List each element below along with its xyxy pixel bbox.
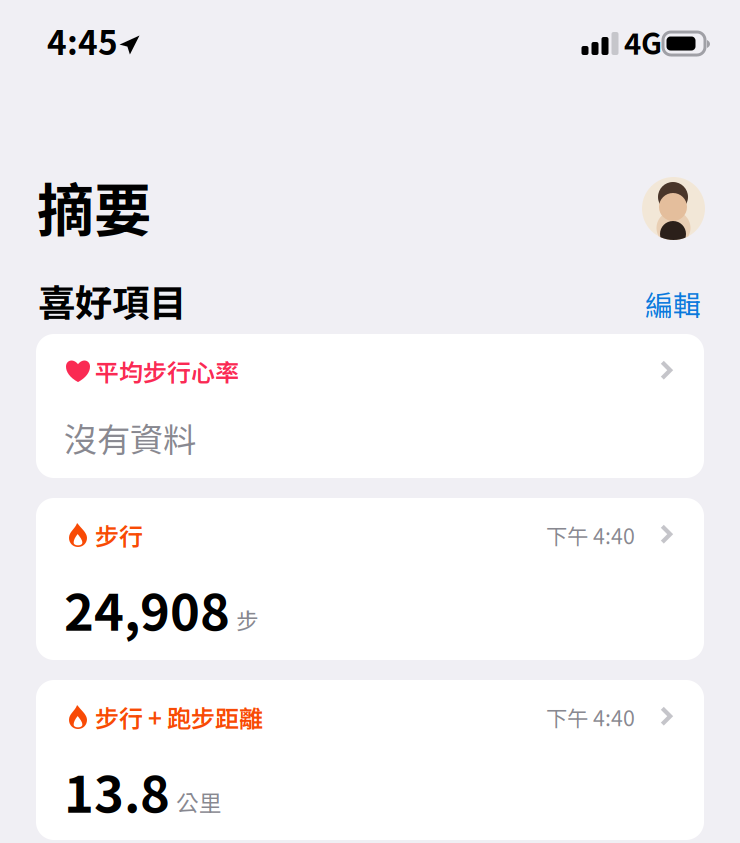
staticText: 4G: [624, 21, 662, 62]
staticText: 步行 + 跑步距離: [95, 700, 263, 734]
staticText: 13.8: [64, 755, 170, 826]
staticText: 編輯: [645, 284, 701, 323]
staticText: 步: [236, 603, 259, 635]
staticText: 4:45: [47, 17, 118, 64]
staticText: 平均步行心率: [95, 354, 239, 388]
staticText: 摘要: [37, 166, 151, 247]
button[interactable]: 步行 + 跑步距離: [36, 680, 704, 840]
button[interactable]: 編輯: [637, 278, 709, 329]
staticText: 下午 4:40: [546, 702, 635, 732]
staticText: 24,908: [64, 573, 230, 644]
button[interactable]: 步行: [36, 498, 704, 660]
button[interactable]: 平均步行心率: [36, 334, 704, 478]
staticText: 公里: [176, 785, 222, 817]
staticText: 下午 4:40: [546, 520, 635, 550]
button[interactable]: Profile photo: [642, 177, 705, 240]
staticText: 沒有資料: [64, 414, 196, 461]
staticText: 步行: [95, 518, 143, 552]
staticText: 喜好項目: [38, 274, 186, 327]
